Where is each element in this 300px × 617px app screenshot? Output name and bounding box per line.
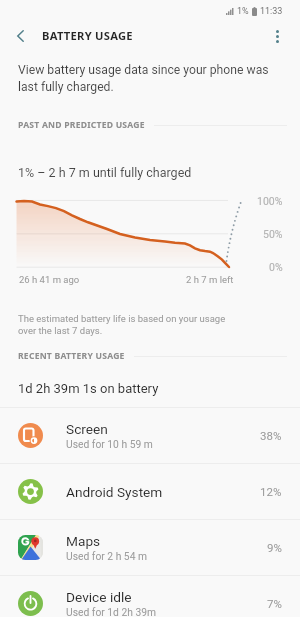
staticText: BATTERY USAGE xyxy=(42,28,133,43)
button[interactable]: Screen xyxy=(0,408,300,463)
staticText: 12% xyxy=(260,485,282,498)
button[interactable]: Android System xyxy=(0,464,300,519)
staticText: Android System xyxy=(66,484,163,500)
staticText: RECENT BATTERY USAGE xyxy=(18,350,125,362)
button[interactable]: Back xyxy=(6,22,34,50)
staticText: 11:33 xyxy=(260,6,283,17)
staticText: 26 h 41 m ago xyxy=(19,274,80,285)
staticText: Used for 1d 2h 39m xyxy=(66,606,157,617)
staticText: The estimated battery life is based on y… xyxy=(18,313,226,336)
button[interactable]: Device idle xyxy=(0,576,300,617)
staticText: 1d 2h 39m 1s on battery xyxy=(18,381,159,396)
staticText: 0% xyxy=(269,261,283,273)
staticText: 1% xyxy=(237,6,249,17)
staticText: PAST AND PREDICTED USAGE xyxy=(18,119,145,131)
button[interactable]: Maps xyxy=(0,520,300,575)
staticText: Used for 2 h 54 m xyxy=(66,550,148,562)
staticText: 50% xyxy=(263,228,283,240)
staticText: Used for 10 h 59 m xyxy=(66,438,153,450)
staticText: Maps xyxy=(66,533,101,549)
button[interactable]: More options xyxy=(263,22,291,50)
staticText: 9% xyxy=(267,541,282,554)
staticText: 7% xyxy=(267,597,282,610)
staticText: 38% xyxy=(260,429,282,442)
staticText: Screen xyxy=(66,421,108,437)
staticText: 2 h 7 m left xyxy=(186,274,234,285)
staticText: Device idle xyxy=(66,589,132,605)
staticText: 100% xyxy=(257,195,283,207)
staticText: 1% – 2 h 7 m until fully charged xyxy=(18,165,192,180)
staticText: View battery usage data since your phone… xyxy=(18,63,269,94)
